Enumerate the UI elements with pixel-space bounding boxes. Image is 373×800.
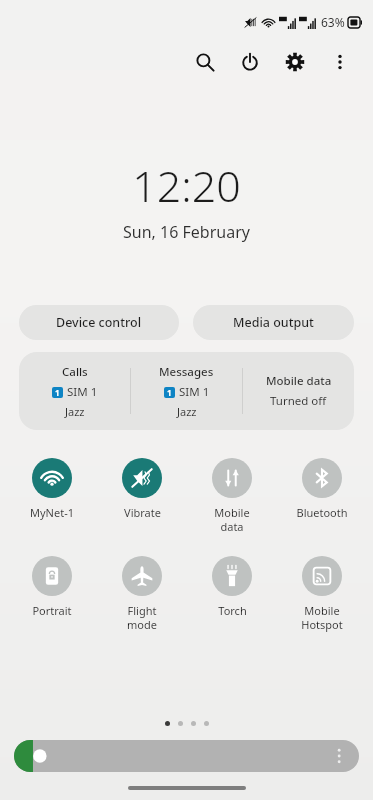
staticText: 12:20 [132,156,241,215]
button[interactable]: Search [189,46,220,77]
button[interactable]: Power off [234,46,265,77]
staticText: Jazz [177,404,197,419]
staticText: SIM 1 [179,384,210,400]
staticText: Jazz [65,404,85,419]
button[interactable]: Calls [19,352,130,430]
button[interactable]: Torch [187,556,277,618]
staticText: Portrait [32,603,72,618]
button[interactable]: MyNet-1 [6,458,97,520]
staticText: Mobile data [214,505,250,534]
staticText: Sun, 16 February [123,221,250,243]
button[interactable]: Device control [19,305,179,340]
button[interactable]: Media output [193,305,354,340]
button[interactable]: Messages [131,352,242,430]
staticText: Messages [159,364,214,380]
staticText: Mobile Hotspot [301,603,343,632]
button[interactable]: Flight mode [97,556,187,632]
staticText: Vibrate [124,505,161,520]
staticText: Turned off [270,393,327,409]
button[interactable]: Mobile Hotspot [277,556,367,632]
button[interactable]: Portrait [6,556,97,618]
staticText: Media output [233,314,314,331]
staticText: Bluetooth [296,505,348,520]
button[interactable]: More options [324,46,355,77]
button[interactable]: Mobile data [187,458,277,534]
staticText: 63% [321,14,345,30]
staticText: MyNet-1 [30,505,74,520]
staticText: 1 [55,387,60,398]
staticText: Device control [56,314,142,331]
staticText: SIM 1 [67,384,98,400]
button[interactable]: Vibrate [97,458,187,520]
staticText: Torch [218,603,247,618]
staticText: Flight mode [127,603,157,632]
button[interactable]: Bluetooth [277,458,367,520]
staticText: Calls [62,364,88,380]
button[interactable]: Brightness [14,740,359,772]
staticText: 1 [167,387,172,398]
staticText: Mobile data [266,373,332,389]
button[interactable]: Settings [279,46,310,77]
button[interactable]: Mobile data [243,352,354,430]
